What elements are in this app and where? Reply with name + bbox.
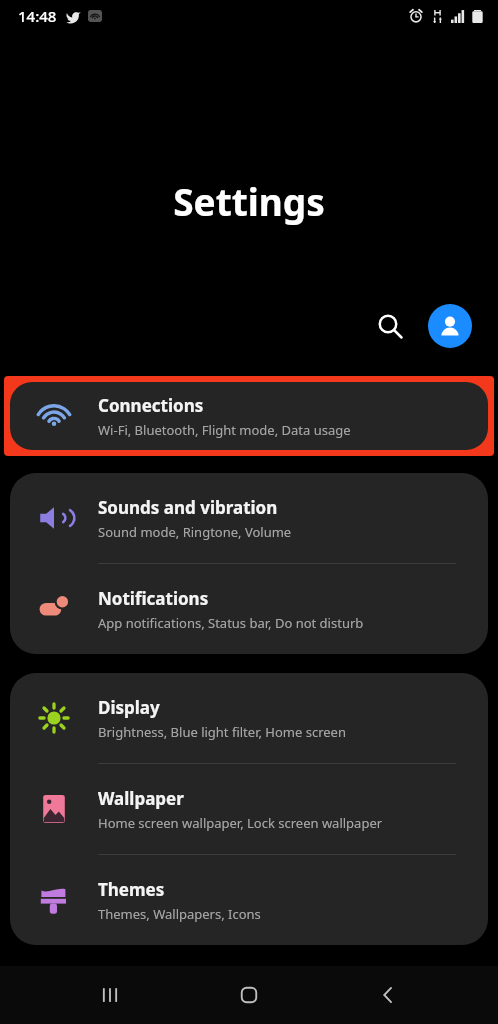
button[interactable]: Home	[220, 966, 278, 1024]
button[interactable]: Connections	[10, 382, 488, 450]
button[interactable]: Connections	[10, 382, 488, 450]
button[interactable]: Back	[359, 966, 417, 1024]
staticText: Brightness, Blue light filter, Home scre…	[98, 723, 346, 741]
staticText: App notifications, Status bar, Do not di…	[98, 614, 364, 632]
staticText: Wi‑Fi, Bluetooth, Flight mode, Data usag…	[98, 421, 351, 439]
button[interactable]: Profile	[428, 304, 472, 348]
button[interactable]: Sounds and vibration	[10, 473, 488, 563]
staticText: Sounds and vibration	[98, 496, 278, 519]
button[interactable]: Notifications	[10, 564, 488, 654]
button[interactable]: Search	[366, 302, 414, 350]
staticText: Sound mode, Ringtone, Volume	[98, 523, 292, 541]
staticText: 14:48	[18, 6, 57, 26]
staticText: Wallpaper	[98, 787, 184, 810]
staticText: Display	[98, 696, 160, 719]
staticText: Settings	[173, 176, 325, 226]
staticText: Notifications	[98, 587, 209, 610]
button[interactable]: Display	[10, 673, 488, 763]
button[interactable]: Wallpaper	[10, 764, 488, 854]
staticText: Connections	[98, 394, 204, 417]
button[interactable]: Recents	[81, 966, 139, 1024]
staticText: Home screen wallpaper, Lock screen wallp…	[98, 814, 383, 832]
staticText: Themes	[98, 878, 165, 901]
button[interactable]: Themes	[10, 855, 488, 945]
staticText: Themes, Wallpapers, Icons	[98, 905, 261, 923]
